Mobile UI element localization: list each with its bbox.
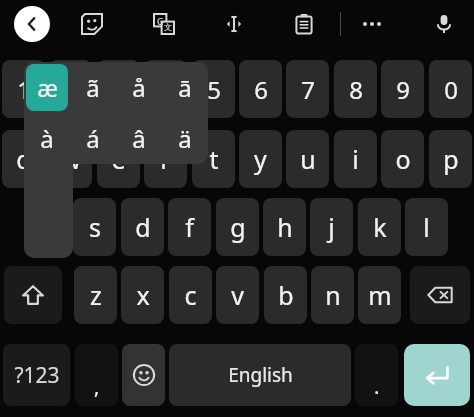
button[interactable]: ?123: [3, 344, 70, 406]
staticText: c: [184, 278, 197, 312]
button[interactable]: Clipboard: [290, 10, 318, 38]
staticText: 0: [444, 73, 458, 106]
staticText: 5: [207, 73, 221, 106]
button[interactable]: b: [264, 266, 307, 324]
staticText: ā: [178, 71, 192, 104]
staticText: p: [443, 142, 459, 176]
button[interactable]: e: [97, 130, 140, 188]
staticText: 1: [17, 73, 31, 106]
button[interactable]: m: [358, 266, 401, 324]
button[interactable]: Enter: [404, 344, 470, 406]
staticText: 6: [254, 73, 268, 106]
button[interactable]: o: [381, 130, 424, 188]
button[interactable]: c: [169, 266, 212, 324]
button[interactable]: ä: [164, 115, 206, 162]
button[interactable]: Stickers: [78, 10, 106, 38]
staticText: g: [230, 210, 246, 244]
button[interactable]: Text editing: [220, 10, 248, 38]
button[interactable]: w: [49, 130, 92, 188]
button[interactable]: ā: [164, 64, 206, 111]
button[interactable]: 7: [286, 60, 329, 118]
staticText: à: [40, 122, 54, 155]
button[interactable]: ,: [75, 344, 118, 406]
button[interactable]: æ: [26, 64, 68, 111]
staticText: G: [157, 15, 164, 27]
button[interactable]: ã: [72, 64, 114, 111]
button[interactable]: English: [169, 344, 351, 406]
button[interactable]: 5: [192, 60, 235, 118]
button[interactable]: n: [311, 266, 354, 324]
button[interactable]: 2: [49, 60, 92, 118]
staticText: s: [89, 210, 101, 244]
button[interactable]: à: [26, 115, 68, 162]
button[interactable]: â: [118, 115, 160, 162]
button[interactable]: .: [355, 344, 398, 406]
button[interactable]: 0: [429, 60, 472, 118]
staticText: e: [111, 142, 126, 176]
button[interactable]: y: [239, 130, 282, 188]
staticText: k: [373, 210, 387, 244]
button[interactable]: á: [72, 115, 114, 162]
button[interactable]: Emoji: [122, 344, 165, 406]
button[interactable]: Voice input: [430, 10, 458, 38]
staticText: l: [423, 210, 430, 244]
button[interactable]: More options: [358, 10, 386, 38]
staticText: æ: [37, 71, 58, 104]
staticText: z: [90, 278, 102, 312]
staticText: .: [374, 373, 380, 400]
button[interactable]: v: [216, 266, 259, 324]
staticText: 8: [349, 73, 363, 106]
button[interactable]: å: [118, 64, 160, 111]
button[interactable]: z: [74, 266, 117, 324]
button[interactable]: Shift: [4, 266, 62, 324]
button[interactable]: x: [121, 266, 164, 324]
staticText: n: [325, 278, 341, 312]
button[interactable]: 1: [2, 60, 45, 118]
staticText: ä: [178, 122, 192, 155]
button[interactable]: g: [216, 198, 259, 256]
button[interactable]: h: [263, 198, 306, 256]
other: Backspace: [410, 266, 470, 324]
staticText: o: [395, 142, 411, 176]
other: Emoji: [122, 344, 165, 406]
staticText: v: [231, 278, 244, 312]
button[interactable]: Translate: [150, 10, 178, 38]
staticText: 文: [164, 22, 172, 32]
staticText: á: [86, 122, 100, 155]
button[interactable]: t: [192, 130, 235, 188]
staticText: j: [328, 210, 335, 244]
button[interactable]: q: [2, 130, 45, 188]
button[interactable]: k: [358, 198, 401, 256]
button[interactable]: 9: [381, 60, 424, 118]
button[interactable]: p: [429, 130, 472, 188]
staticText: English: [228, 362, 293, 388]
staticText: d: [135, 210, 151, 244]
staticText: h: [277, 210, 293, 244]
button[interactable]: i: [334, 130, 377, 188]
button[interactable]: 3: [97, 60, 140, 118]
button[interactable]: j: [310, 198, 353, 256]
button[interactable]: 6: [239, 60, 282, 118]
staticText: b: [278, 278, 294, 312]
staticText: x: [136, 278, 150, 312]
staticText: 7: [301, 73, 315, 106]
button[interactable]: d: [121, 198, 164, 256]
button[interactable]: f: [168, 198, 211, 256]
staticText: w: [61, 142, 81, 176]
button[interactable]: s: [73, 198, 116, 256]
other: Enter: [404, 344, 470, 406]
button[interactable]: Back: [14, 6, 50, 42]
button[interactable]: r: [144, 130, 187, 188]
button[interactable]: u: [286, 130, 329, 188]
button[interactable]: 8: [334, 60, 377, 118]
staticText: 9: [396, 73, 410, 106]
button[interactable]: l: [405, 198, 448, 256]
staticText: ,: [94, 373, 100, 400]
button[interactable]: 4: [144, 60, 187, 118]
button[interactable]: Backspace: [410, 266, 470, 324]
staticText: ?123: [14, 361, 60, 390]
staticText: i: [352, 142, 359, 176]
